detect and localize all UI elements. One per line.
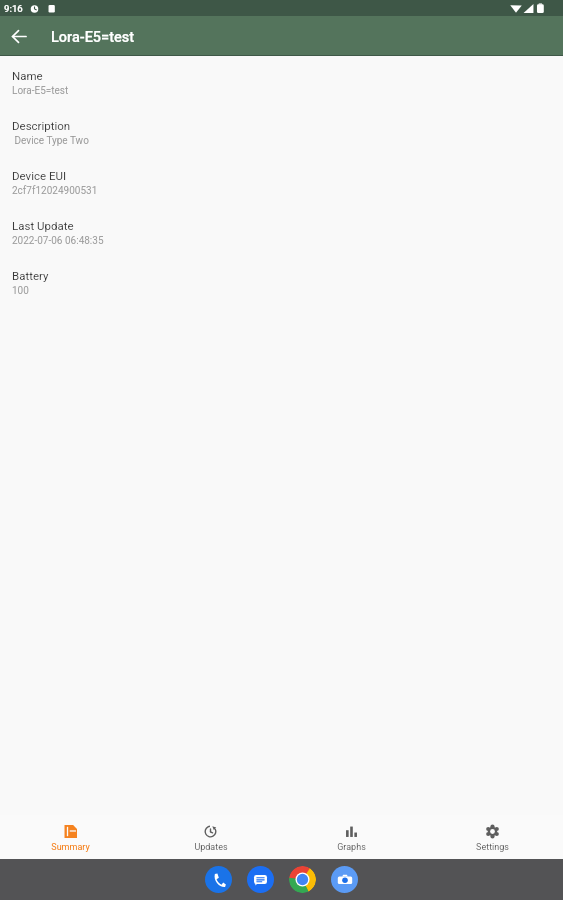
- button[interactable]: Camera: [331, 866, 358, 893]
- button[interactable]: Graphs: [281, 815, 422, 859]
- staticText: Battery: [12, 269, 49, 282]
- staticText: Last Update: [12, 219, 74, 232]
- button[interactable]: Updates: [140, 815, 281, 859]
- staticText: Description: [12, 119, 71, 132]
- staticText: Updates: [194, 842, 228, 853]
- button[interactable]: Chrome: [289, 866, 316, 893]
- staticText: Summary: [51, 842, 90, 853]
- button[interactable]: Settings: [422, 815, 563, 859]
- staticText: Graphs: [337, 842, 366, 853]
- staticText: 2cf7f12024900531: [12, 185, 98, 197]
- staticText: Settings: [476, 842, 509, 853]
- staticText: 100: [12, 285, 29, 297]
- staticText: Name: [12, 69, 43, 82]
- button[interactable]: Back: [0, 17, 38, 55]
- staticText: 9:16: [4, 3, 23, 14]
- staticText: 2022-07-06 06:48:35: [12, 235, 104, 247]
- staticText: Device EUI: [12, 169, 67, 182]
- button[interactable]: Summary: [0, 815, 140, 859]
- staticText: Lora-E5=test: [51, 29, 135, 46]
- button[interactable]: Messages: [247, 866, 274, 893]
- staticText: Device Type Two: [12, 135, 89, 147]
- staticText: Lora-E5=test: [12, 85, 69, 97]
- button[interactable]: Phone: [205, 866, 232, 893]
